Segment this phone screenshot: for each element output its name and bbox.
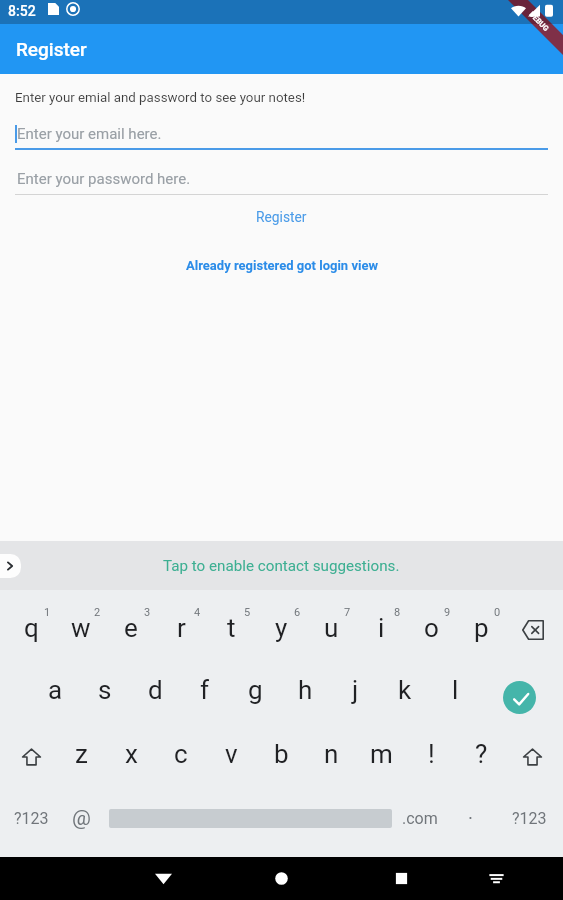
button[interactable]: 5: [206, 600, 256, 656]
staticText: !: [428, 739, 435, 769]
staticText: 2: [94, 606, 101, 619]
button[interactable]: Backspace: [506, 600, 563, 656]
staticText: c: [174, 739, 188, 769]
staticText: .com: [402, 809, 438, 828]
button[interactable]: c: [156, 726, 206, 782]
button[interactable]: g: [230, 662, 280, 718]
button[interactable]: Enter your email here.: [15, 117, 548, 150]
staticText: i: [378, 613, 385, 643]
staticText: h: [298, 675, 313, 705]
button[interactable]: z: [56, 726, 106, 782]
button[interactable]: 4: [156, 600, 206, 656]
button[interactable]: 3: [106, 600, 156, 656]
button[interactable]: Shift: [6, 726, 56, 782]
button[interactable]: ?123: [6, 790, 56, 846]
button[interactable]: @: [56, 790, 106, 846]
button[interactable]: 8: [356, 600, 406, 656]
staticText: l: [452, 675, 459, 705]
staticText: 7: [344, 606, 351, 619]
button[interactable]: Keyboard: [474, 857, 518, 900]
staticText: Already registered got login view: [186, 258, 378, 273]
button[interactable]: ·: [445, 790, 495, 846]
button[interactable]: n: [306, 726, 356, 782]
staticText: z: [75, 739, 88, 769]
button[interactable]: 6: [256, 600, 306, 656]
button[interactable]: Home: [259, 857, 303, 900]
button[interactable]: h: [280, 662, 330, 718]
staticText: Register: [16, 38, 87, 60]
staticText: 1: [44, 606, 51, 619]
button[interactable]: ?123: [495, 790, 563, 846]
staticText: n: [324, 739, 339, 769]
button[interactable]: Register: [15, 206, 548, 228]
staticText: Enter your emial and password to see you…: [15, 90, 306, 106]
staticText: q: [24, 613, 39, 643]
staticText: 8: [394, 606, 401, 619]
staticText: 8:52: [8, 3, 36, 19]
staticText: g: [248, 675, 263, 705]
button[interactable]: Recents: [379, 857, 423, 900]
staticText: e: [124, 613, 138, 643]
button[interactable]: s: [80, 662, 130, 718]
staticText: t: [227, 613, 236, 643]
button[interactable]: d: [130, 662, 180, 718]
staticText: b: [274, 739, 289, 769]
button[interactable]: ?: [456, 726, 506, 782]
button[interactable]: Space: [106, 790, 395, 846]
button[interactable]: j: [330, 662, 380, 718]
staticText: ?123: [14, 809, 49, 828]
staticText: m: [370, 739, 393, 769]
staticText: 5: [244, 606, 251, 619]
button[interactable]: .com: [395, 790, 445, 846]
button[interactable]: 9: [406, 600, 456, 656]
staticText: @: [72, 806, 91, 831]
staticText: 6: [294, 606, 301, 619]
staticText: y: [275, 613, 288, 643]
staticText: DEBUG: [527, 10, 551, 33]
button[interactable]: 1: [6, 600, 56, 656]
button[interactable]: m: [356, 726, 406, 782]
staticText: 9: [444, 606, 451, 619]
staticText: ·: [468, 807, 473, 829]
staticText: f: [200, 675, 210, 705]
button[interactable]: v: [206, 726, 256, 782]
button[interactable]: 7: [306, 600, 356, 656]
button[interactable]: f: [180, 662, 230, 718]
button[interactable]: Already registered got login view: [15, 254, 548, 276]
staticText: w: [71, 613, 91, 643]
button[interactable]: 0: [456, 600, 506, 656]
staticText: 0: [494, 606, 501, 619]
button[interactable]: k: [380, 662, 430, 718]
button[interactable]: l: [430, 662, 480, 718]
staticText: a: [48, 675, 63, 705]
staticText: Enter your password here.: [17, 170, 191, 188]
staticText: Register: [256, 209, 307, 225]
button[interactable]: Back: [141, 857, 185, 900]
staticText: 4: [194, 606, 201, 619]
staticText: p: [474, 613, 489, 643]
button[interactable]: Shift: [506, 726, 563, 782]
button[interactable]: b: [256, 726, 306, 782]
staticText: ?: [475, 739, 488, 769]
staticText: d: [148, 675, 163, 705]
button[interactable]: Expand suggestions: [0, 554, 21, 578]
button[interactable]: 2: [56, 600, 106, 656]
button[interactable]: !: [406, 726, 456, 782]
staticText: o: [424, 613, 439, 643]
staticText: k: [398, 675, 412, 705]
button[interactable]: x: [106, 726, 156, 782]
staticText: v: [225, 739, 238, 769]
button[interactable]: Done: [480, 662, 563, 718]
staticText: 3: [144, 606, 151, 619]
staticText: u: [324, 613, 339, 643]
staticText: ?123: [512, 809, 547, 828]
button[interactable]: Enter your password here.: [15, 162, 548, 195]
staticText: r: [177, 613, 186, 643]
staticText: j: [352, 675, 359, 705]
staticText: x: [125, 739, 138, 769]
staticText: Enter your email here.: [17, 125, 162, 143]
button[interactable]: Tap to enable contact suggestions.: [163, 557, 400, 575]
button[interactable]: a: [30, 662, 80, 718]
staticText: s: [98, 675, 112, 705]
